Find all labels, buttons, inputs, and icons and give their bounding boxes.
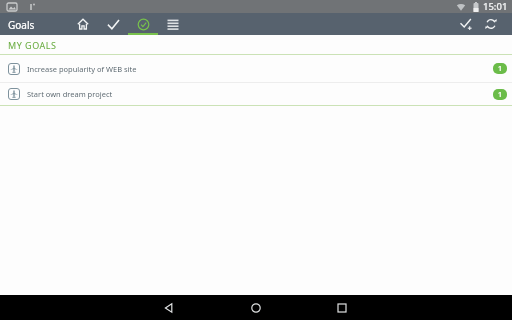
button[interactable] <box>128 13 158 35</box>
button[interactable] <box>454 13 478 35</box>
button[interactable] <box>244 295 268 320</box>
staticText: MY GOALS <box>8 39 57 51</box>
button[interactable] <box>158 13 188 35</box>
button[interactable] <box>98 13 128 35</box>
staticText: 1 <box>498 64 503 74</box>
button[interactable] <box>68 13 98 35</box>
button[interactable] <box>330 295 354 320</box>
button[interactable]: Increase popularity of WEB site <box>0 55 512 82</box>
staticText: Increase popularity of WEB site <box>27 64 137 74</box>
staticText: Start own dream project <box>27 89 113 99</box>
staticText: 1 <box>498 90 503 100</box>
button[interactable]: Start own dream project <box>0 83 512 105</box>
staticText: 15:01 <box>483 0 508 13</box>
staticText: Goals <box>8 18 35 32</box>
button[interactable] <box>157 295 181 320</box>
button[interactable] <box>479 13 503 35</box>
